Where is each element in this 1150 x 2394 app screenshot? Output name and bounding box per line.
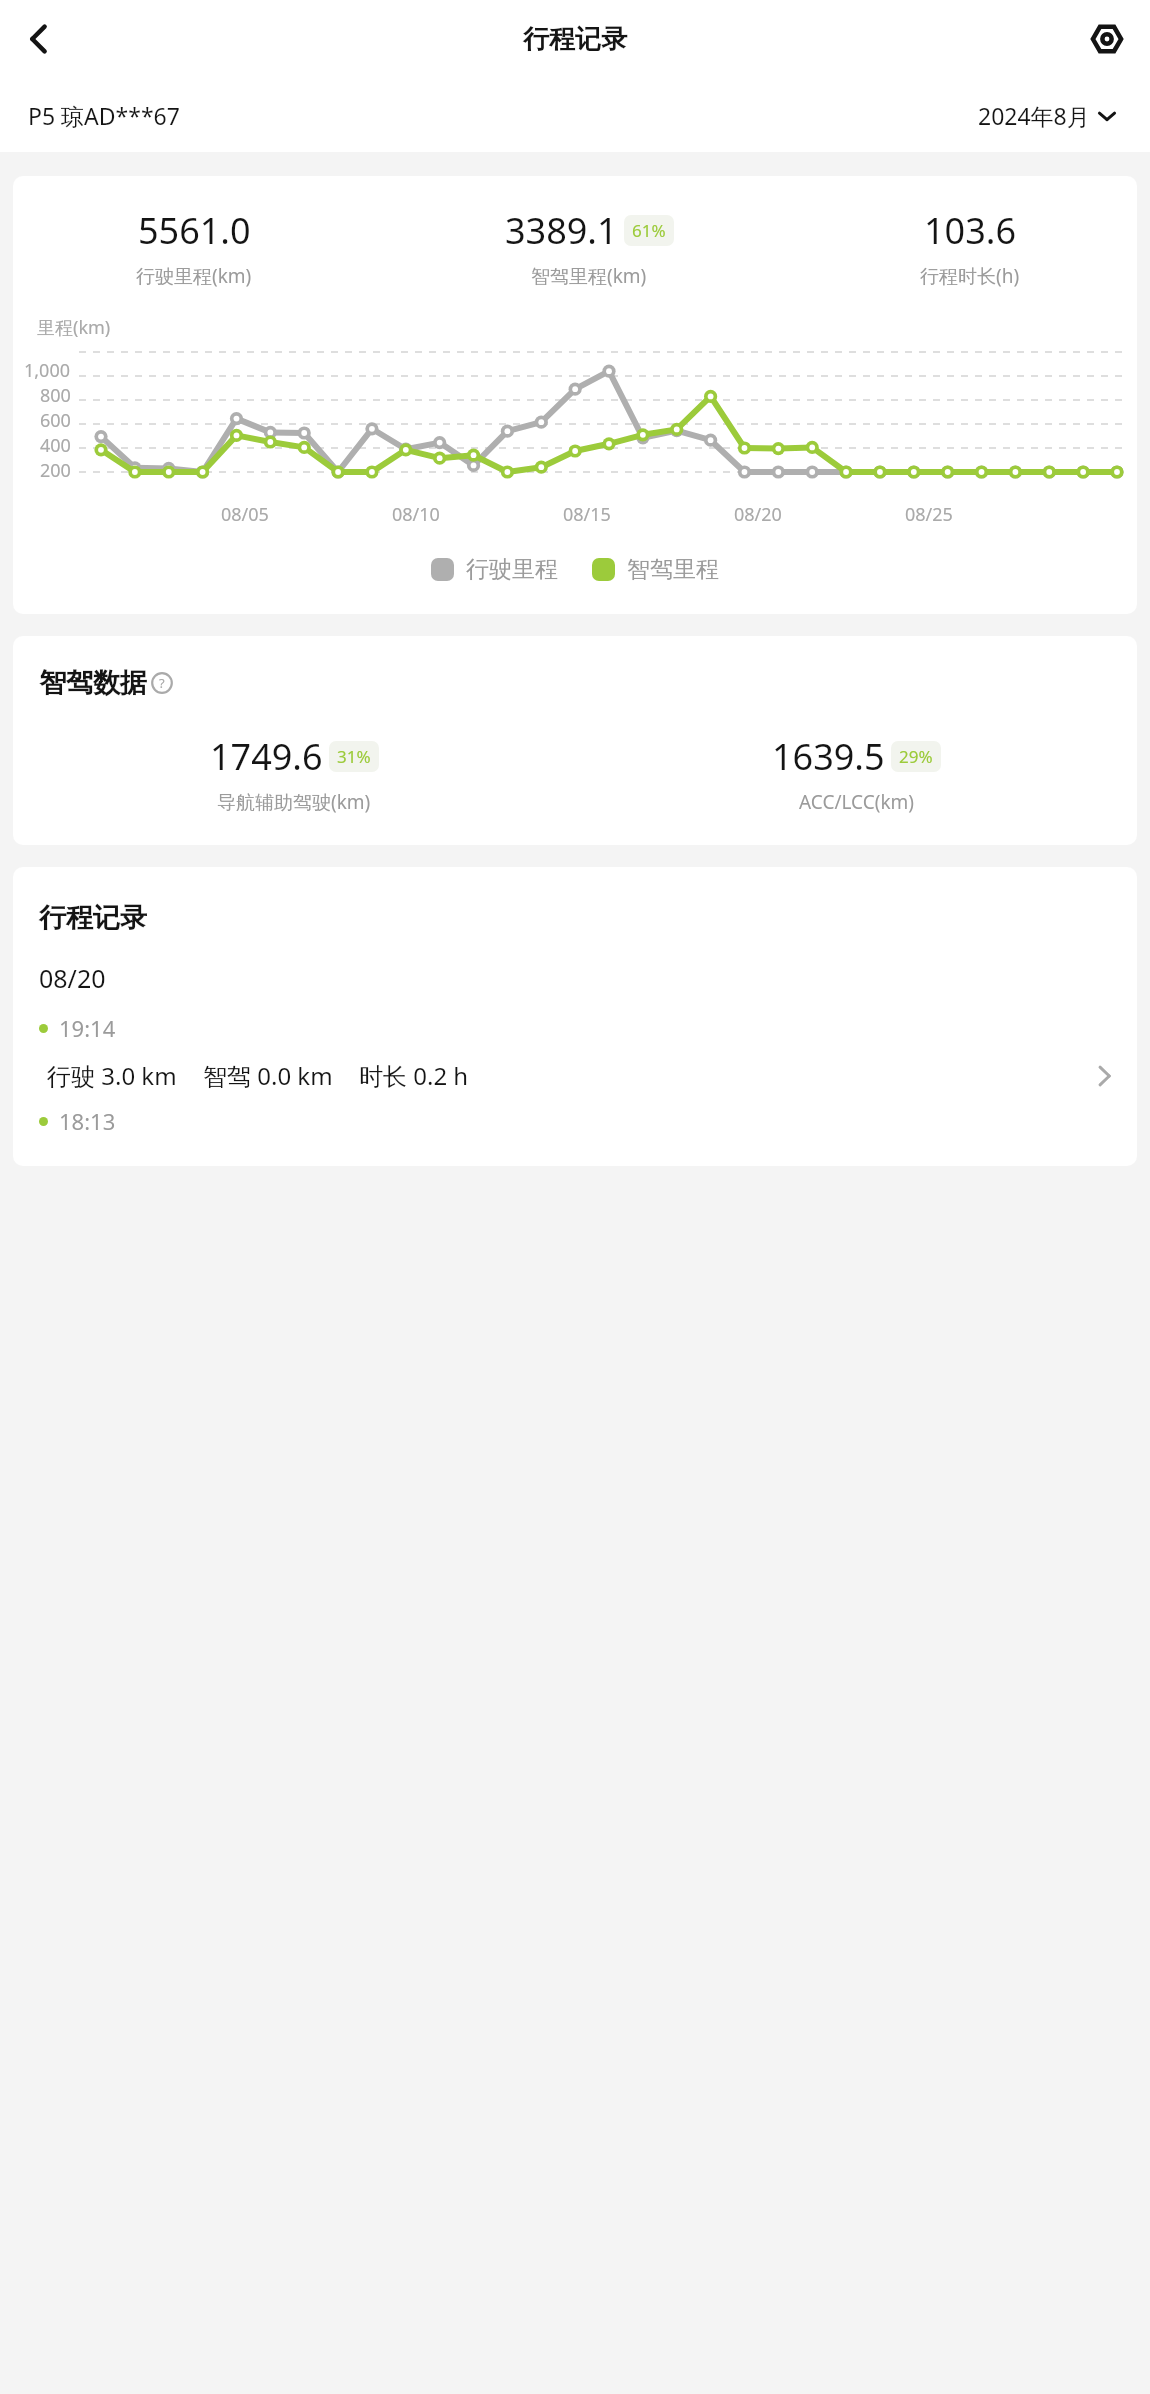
button[interactable]: 19:14 — [13, 1013, 1137, 1092]
button[interactable]: Back — [8, 8, 70, 70]
staticText: 61% — [632, 219, 666, 242]
staticText: ? — [159, 674, 165, 692]
staticText: 行程记录 — [523, 23, 627, 56]
staticText: 1749.6 — [210, 732, 323, 781]
staticText: 智驾 0.0 km — [203, 1059, 333, 1092]
staticText: 3389.1 — [505, 206, 618, 255]
staticText: 800 — [40, 383, 71, 408]
button[interactable]: 智驾数据 — [39, 666, 173, 700]
staticText: 31% — [337, 745, 371, 768]
staticText: 400 — [40, 433, 71, 458]
staticText: 智驾里程(km) — [531, 263, 647, 289]
staticText: 08/10 — [392, 502, 563, 527]
staticText: 时长 0.2 h — [359, 1059, 469, 1092]
staticText: 导航辅助驾驶(km) — [217, 789, 371, 815]
staticText: ACC/LCC(km) — [799, 789, 914, 815]
staticText: 1639.5 — [772, 732, 885, 781]
staticText: 行程记录 — [39, 901, 147, 935]
staticText: 29% — [899, 745, 933, 768]
staticText: 19:14 — [59, 1013, 116, 1043]
staticText: 18:13 — [59, 1106, 116, 1136]
staticText: 08/05 — [221, 502, 392, 527]
staticText: 103.6 — [924, 206, 1017, 255]
staticText: 行驶里程 — [466, 555, 558, 584]
staticText: P5 琼AD***67 — [28, 100, 180, 131]
staticText: 2024年8月 — [978, 100, 1090, 131]
staticText: 行驶 3.0 km — [47, 1059, 177, 1092]
staticText: 行程时长(h) — [920, 263, 1020, 289]
staticText: 5561.0 — [138, 206, 251, 255]
staticText: 600 — [40, 408, 71, 433]
staticText: 200 — [40, 458, 71, 478]
staticText: 08/15 — [563, 502, 734, 527]
staticText: 行驶里程(km) — [136, 263, 252, 289]
staticText: 08/25 — [905, 502, 1076, 527]
button[interactable]: 2024年8月 — [972, 94, 1122, 137]
staticText: 08/20 — [734, 502, 905, 527]
button[interactable]: Settings — [1078, 10, 1136, 68]
staticText: 里程(km) — [37, 315, 111, 340]
staticText: 08/20 — [39, 961, 106, 995]
staticText: 1,000 — [24, 358, 71, 383]
staticText: 智驾里程 — [627, 555, 719, 584]
staticText: 智驾数据 — [39, 666, 147, 700]
other: Help — [151, 672, 173, 694]
